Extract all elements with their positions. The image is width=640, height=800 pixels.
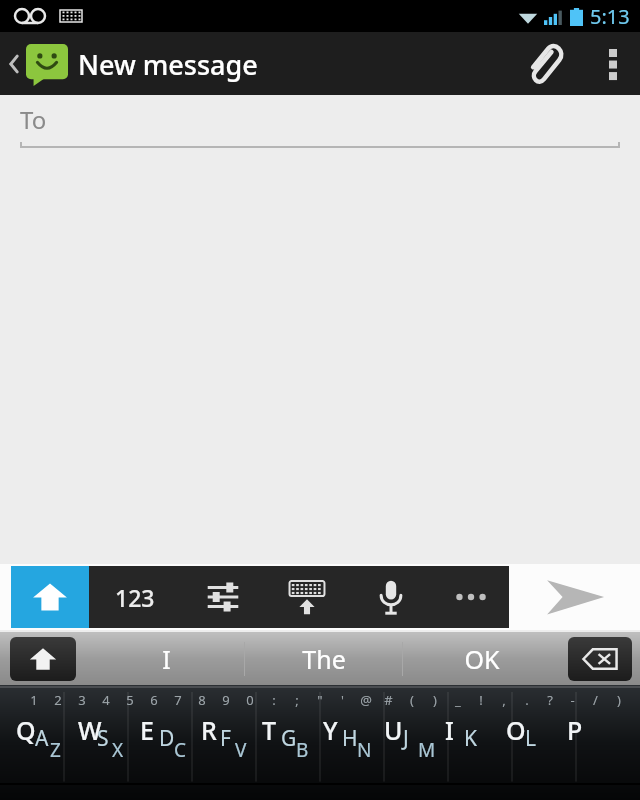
button[interactable]: More — [433, 566, 509, 628]
staticText: 123 — [115, 582, 155, 613]
staticText: 1 — [30, 691, 38, 709]
staticText: L — [525, 724, 537, 753]
staticText: : — [272, 691, 276, 709]
staticText: G — [281, 724, 297, 753]
button[interactable]: Keyboard keys — [0, 685, 640, 800]
staticText: N — [357, 737, 372, 763]
staticText: @ — [360, 691, 372, 709]
staticText: U — [384, 713, 403, 747]
staticText: Q — [16, 713, 36, 747]
staticText: , — [502, 691, 506, 709]
staticText: New message — [78, 46, 258, 83]
staticText: X — [112, 737, 124, 763]
staticText: 4 — [102, 691, 110, 709]
staticText: J — [403, 724, 409, 753]
staticText: M — [418, 737, 436, 763]
staticText: V — [235, 737, 247, 763]
staticText: 5:13 — [590, 3, 630, 30]
staticText: # — [384, 691, 393, 709]
staticText: O — [506, 713, 526, 747]
staticText: ( — [410, 691, 414, 709]
staticText: ? — [547, 691, 553, 709]
staticText: P — [567, 713, 583, 747]
staticText: E — [140, 713, 154, 747]
staticText: . — [525, 691, 529, 709]
staticText: " — [317, 691, 323, 709]
staticText: R — [201, 713, 217, 747]
staticText: K — [464, 724, 477, 753]
staticText: ) — [617, 691, 621, 709]
staticText: H — [342, 724, 358, 753]
staticText: 5 — [126, 691, 134, 709]
staticText: ) — [433, 691, 437, 709]
button[interactable]: 123 — [89, 566, 181, 628]
button[interactable]: The — [245, 632, 402, 685]
button[interactable]: Send — [509, 564, 640, 630]
staticText: The — [302, 642, 346, 676]
staticText: 3 — [78, 691, 86, 709]
staticText: _ — [455, 691, 461, 709]
staticText: 7 — [174, 691, 182, 709]
staticText: T — [262, 713, 277, 747]
staticText: To — [20, 103, 47, 136]
button[interactable]: Attach — [516, 36, 572, 92]
staticText: S — [97, 724, 109, 753]
staticText: Y — [323, 713, 338, 747]
button[interactable]: To — [0, 95, 640, 153]
staticText: - — [570, 691, 575, 709]
staticText: 6 — [150, 691, 158, 709]
staticText: 9 — [222, 691, 230, 709]
staticText: OK — [464, 642, 500, 676]
staticText: Z — [50, 737, 61, 763]
button[interactable]: Voice input — [349, 566, 433, 628]
staticText: 0 — [246, 691, 254, 709]
button[interactable]: Keyboard — [265, 566, 349, 628]
button[interactable]: More options — [586, 32, 640, 95]
staticText: ! — [479, 691, 483, 709]
staticText: ; — [295, 691, 299, 709]
staticText: ' — [341, 691, 344, 709]
staticText: F — [220, 724, 231, 753]
staticText: C — [174, 737, 187, 763]
staticText: D — [159, 724, 175, 753]
staticText: B — [296, 737, 309, 763]
button[interactable]: OK — [403, 632, 560, 685]
staticText: 8 — [198, 691, 206, 709]
button[interactable]: I — [88, 632, 244, 685]
button[interactable]: Backspace — [568, 637, 632, 681]
button[interactable]: Settings — [181, 566, 265, 628]
staticText: / — [593, 691, 598, 709]
staticText: 2 — [54, 691, 62, 709]
button[interactable]: Shift — [10, 637, 76, 681]
staticText: W — [78, 713, 102, 747]
button[interactable]: Shift — [11, 566, 89, 628]
staticText: I — [162, 642, 171, 676]
staticText: I — [445, 713, 454, 747]
button[interactable]: New message — [0, 42, 266, 86]
staticText: A — [35, 724, 49, 753]
